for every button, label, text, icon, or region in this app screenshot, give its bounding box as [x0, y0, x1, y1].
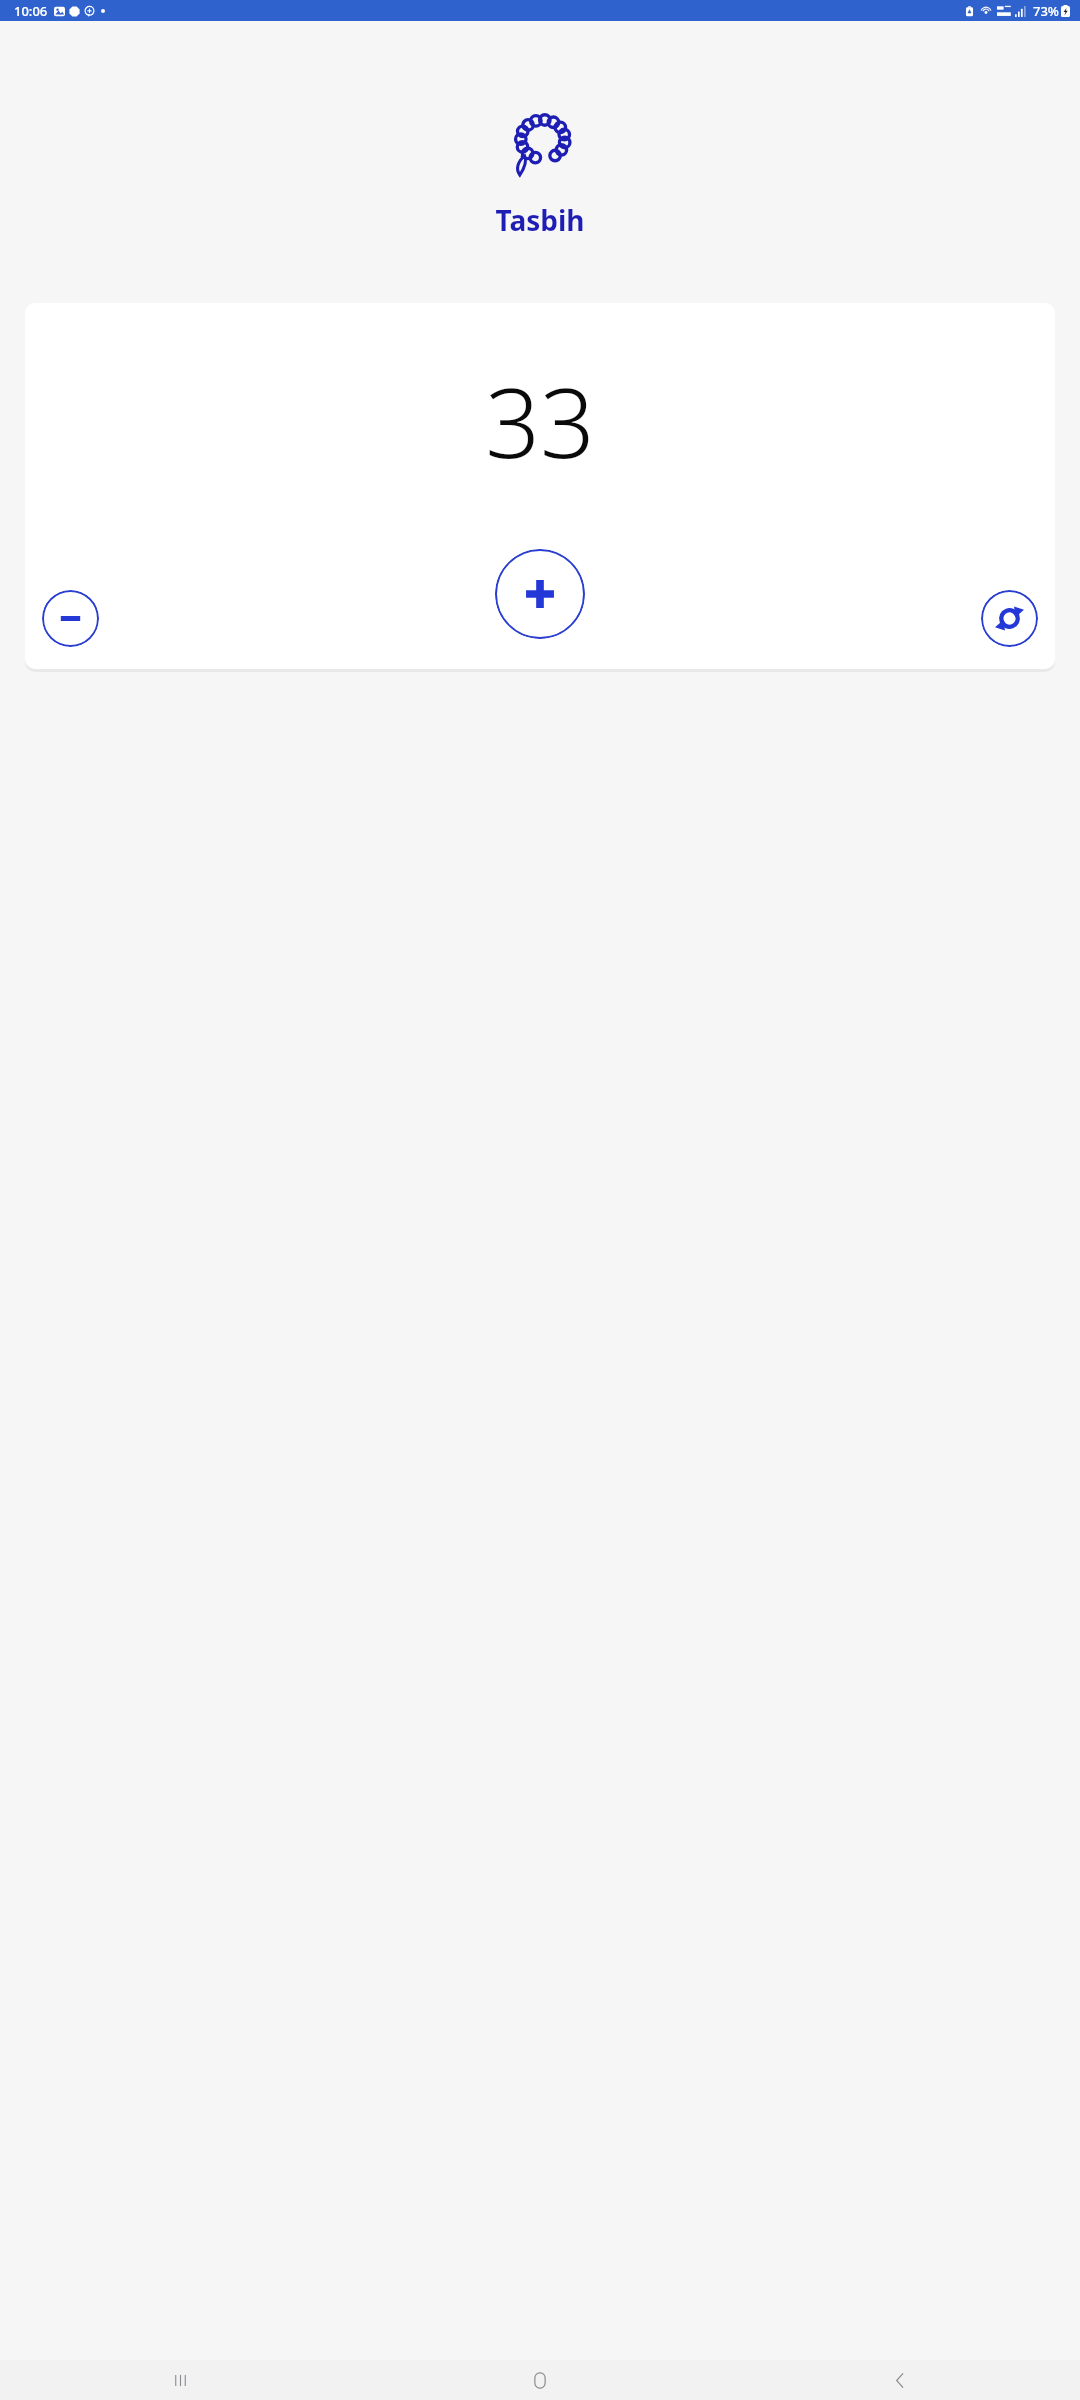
staticText: Tasbih [495, 201, 585, 239]
staticText: 33 [485, 355, 595, 486]
button[interactable]: Back [720, 2360, 1080, 2400]
button[interactable]: Decrement [42, 590, 99, 647]
staticText: 73% [1033, 2, 1059, 20]
button[interactable]: Increment [495, 549, 585, 639]
other: Tasbih beads [508, 117, 572, 175]
button[interactable]: Reset [981, 590, 1038, 647]
staticText: 10:06 [14, 2, 48, 20]
button[interactable]: Recents [0, 2360, 360, 2400]
button[interactable]: Home [360, 2360, 720, 2400]
